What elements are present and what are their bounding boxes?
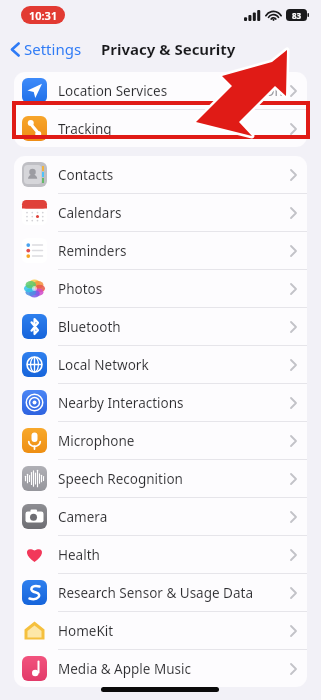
button[interactable]: Contacts <box>14 156 307 194</box>
staticText: Local Network <box>58 356 290 374</box>
staticText: Nearby Interactions <box>58 394 290 412</box>
staticText: Calendars <box>58 204 290 222</box>
button[interactable]: Local Network <box>14 346 307 384</box>
button[interactable]: Photos <box>14 270 307 308</box>
staticText: On <box>264 82 283 100</box>
staticText: Camera <box>58 508 290 526</box>
button[interactable]: Microphone <box>14 422 307 460</box>
staticText: Privacy & Security <box>101 39 236 59</box>
button[interactable]: Tracking <box>14 110 307 147</box>
button[interactable]: Location Services <box>14 72 307 110</box>
staticText: Media & Apple Music <box>58 660 290 678</box>
button[interactable]: Settings <box>7 36 86 62</box>
button[interactable]: HomeKit <box>14 612 307 650</box>
staticText: Location Services <box>58 82 264 100</box>
button[interactable]: Media & Apple Music <box>14 650 307 687</box>
button[interactable]: Reminders <box>14 232 307 270</box>
staticText: Reminders <box>58 242 290 260</box>
button[interactable]: Nearby Interactions <box>14 384 307 422</box>
staticText: Speech Recognition <box>58 470 290 488</box>
staticText: Settings <box>24 39 82 59</box>
button[interactable]: Bluetooth <box>14 308 307 346</box>
button[interactable]: Health <box>14 536 307 574</box>
staticText: Microphone <box>58 432 290 450</box>
staticText: 83 <box>292 10 302 21</box>
staticText: Contacts <box>58 166 290 184</box>
staticText: Health <box>58 546 290 564</box>
button[interactable]: Calendars <box>14 194 307 232</box>
staticText: Tracking <box>58 120 290 138</box>
staticText: 10:31 <box>29 8 58 23</box>
button[interactable]: Research Sensor & Usage Data <box>14 574 307 612</box>
button[interactable]: Camera <box>14 498 307 536</box>
button[interactable]: Speech Recognition <box>14 460 307 498</box>
staticText: Bluetooth <box>58 318 290 336</box>
staticText: Research Sensor & Usage Data <box>58 584 290 602</box>
staticText: Photos <box>58 280 290 298</box>
staticText: HomeKit <box>58 622 290 640</box>
